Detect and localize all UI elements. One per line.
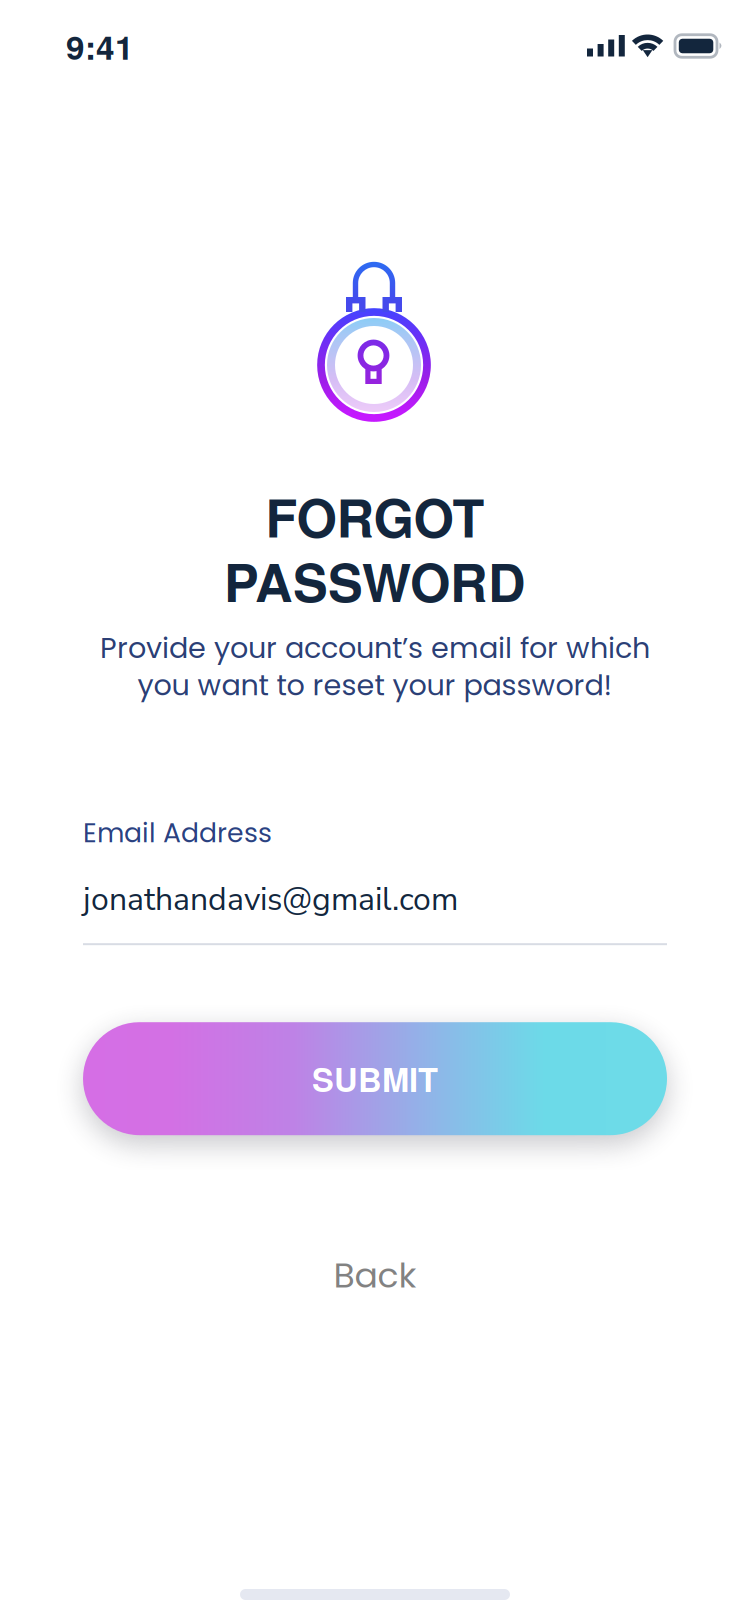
staticText: Provide your account’s email for which: [100, 628, 650, 668]
staticText: 9:41: [66, 22, 134, 70]
staticText: Back: [333, 1251, 416, 1300]
staticText: you want to reset your password!: [137, 665, 612, 705]
staticText: jonathandavis@gmail.com: [83, 877, 458, 921]
staticText: FORGOT: [265, 479, 484, 553]
staticText: SUBMIT: [312, 1055, 438, 1102]
staticText: PASSWORD: [224, 543, 526, 618]
button[interactable]: Back: [333, 1251, 416, 1300]
button[interactable]: SUBMIT: [83, 1022, 667, 1135]
staticText: Email Address: [83, 814, 272, 851]
